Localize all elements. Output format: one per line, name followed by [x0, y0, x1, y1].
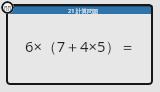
- staticText: 問: [4, 4, 11, 13]
- staticText: 6×（7＋4×5）＝: [25, 36, 135, 56]
- button[interactable]: Problem number: [1, 1, 14, 14]
- staticText: 21 計算問題: [68, 7, 99, 15]
